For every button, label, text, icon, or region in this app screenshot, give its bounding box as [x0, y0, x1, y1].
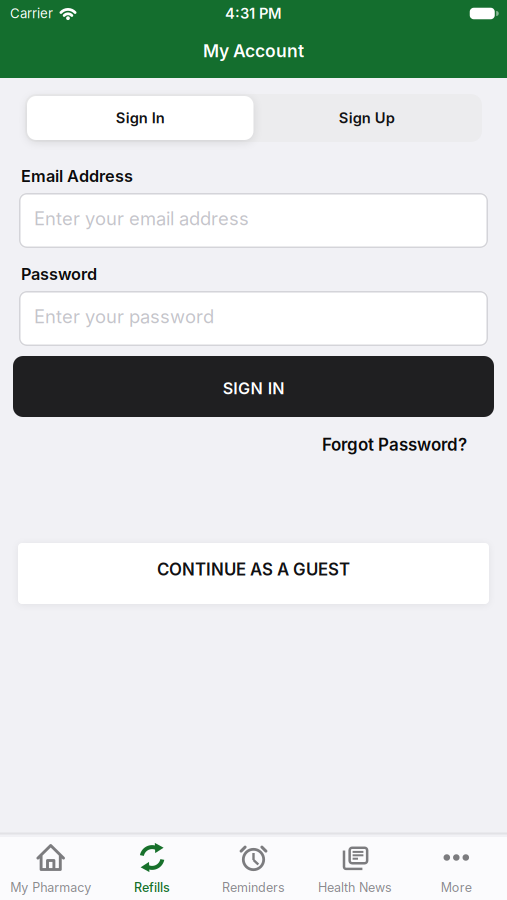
staticText: My Account: [203, 40, 304, 61]
staticText: CONTINUE AS A GUEST: [157, 559, 350, 580]
staticText: Forgot Password?: [322, 434, 467, 455]
staticText: Health News: [318, 880, 392, 895]
staticText: Sign In: [116, 109, 165, 127]
staticText: My Pharmacy: [10, 880, 91, 895]
button[interactable]: Refills: [101, 838, 203, 896]
button[interactable]: CONTINUE AS A GUEST: [18, 543, 489, 604]
staticText: 4:31 PM: [225, 5, 282, 22]
button[interactable]: Reminders: [203, 838, 304, 896]
button[interactable]: More: [406, 838, 507, 896]
staticText: Password: [21, 264, 97, 284]
staticText: SIGN IN: [223, 379, 284, 398]
staticText: Email Address: [21, 166, 133, 186]
staticText: Carrier: [10, 5, 53, 21]
button[interactable]: Sign Up: [253, 96, 480, 140]
button[interactable]: Email Address: [19, 193, 488, 248]
button[interactable]: Sign In: [27, 96, 253, 140]
staticText: Sign Up: [339, 109, 395, 127]
staticText: More: [441, 880, 472, 895]
button[interactable]: SIGN IN: [13, 356, 494, 417]
button[interactable]: My Pharmacy: [0, 838, 101, 896]
staticText: Enter your email address: [34, 207, 249, 230]
staticText: Reminders: [222, 880, 285, 895]
button[interactable]: Forgot Password?: [322, 437, 467, 455]
staticText: Enter your password: [34, 305, 214, 328]
button[interactable]: Health News: [304, 838, 406, 896]
staticText: Refills: [134, 880, 170, 895]
button[interactable]: Password: [19, 291, 488, 346]
